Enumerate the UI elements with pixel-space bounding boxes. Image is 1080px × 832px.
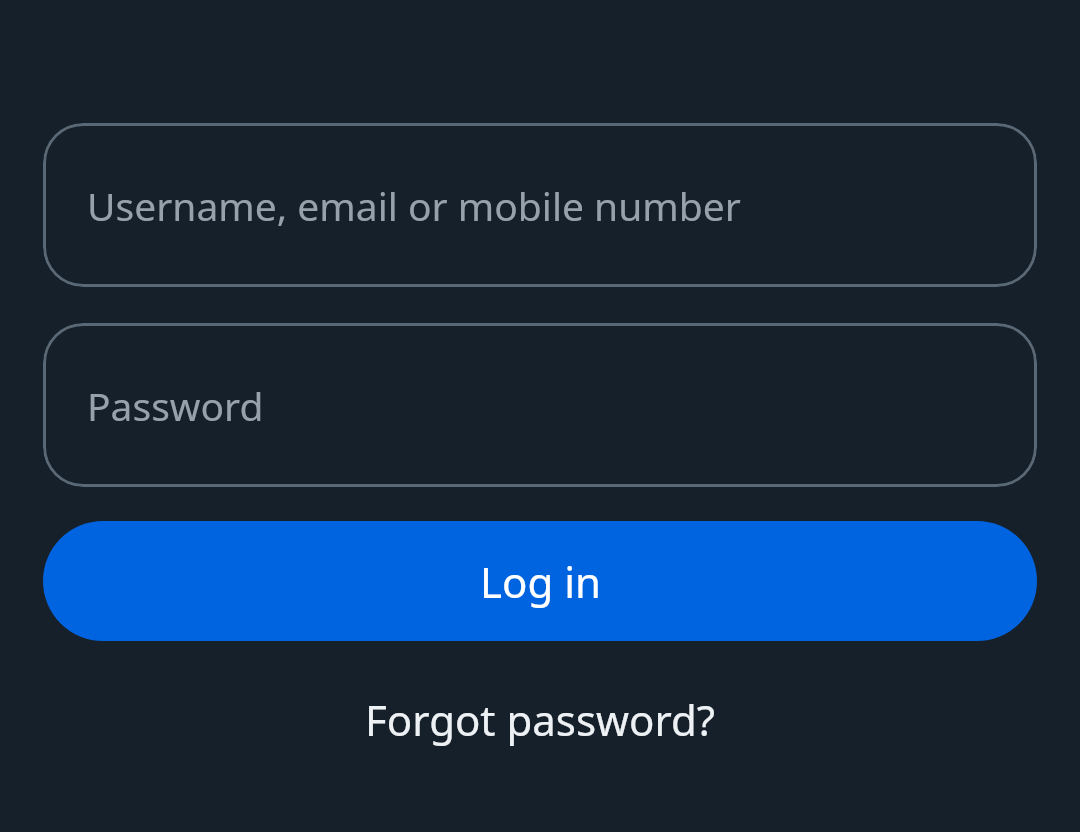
staticText: Log in (480, 553, 601, 610)
staticText: Password (87, 379, 264, 432)
button[interactable]: Password (43, 323, 1037, 487)
staticText: Username, email or mobile number (87, 179, 741, 232)
button[interactable]: Username, email or mobile number (43, 123, 1037, 287)
button[interactable]: Forgot password? (365, 691, 716, 748)
button[interactable]: Log in (43, 521, 1037, 641)
staticText: Forgot password? (365, 691, 716, 748)
